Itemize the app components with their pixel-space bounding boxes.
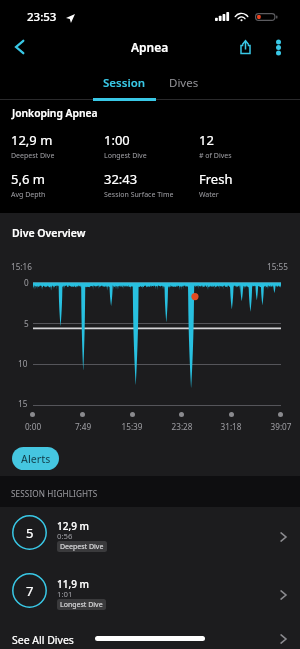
staticText: 23:53	[27, 9, 57, 25]
staticText: 12	[199, 131, 214, 149]
staticText: 23:28	[160, 421, 204, 432]
staticText: Water	[199, 190, 219, 200]
staticText: SESSION HIGHLIGHTS	[11, 488, 98, 499]
button[interactable]: 5	[0, 508, 300, 566]
button[interactable]: Back	[2, 30, 36, 64]
button[interactable]: Dives	[160, 70, 208, 95]
button[interactable]: More options	[266, 35, 290, 59]
staticText: 39:07	[259, 421, 300, 432]
staticText: 11,9 m	[57, 577, 89, 591]
staticText: 0	[24, 277, 29, 288]
staticText: Deepest Dive	[11, 151, 55, 161]
staticText: 15:16	[11, 261, 32, 272]
staticText: Apnea	[131, 39, 169, 55]
staticText: 31:18	[209, 421, 253, 432]
staticText: 10	[18, 358, 28, 369]
staticText: Longest Dive	[104, 151, 147, 161]
button[interactable]: Session	[93, 70, 156, 95]
button[interactable]: See All Dives	[0, 621, 300, 649]
staticText: Dive Overview	[12, 226, 86, 240]
staticText: 7	[26, 582, 34, 600]
staticText: Session Surface Time	[104, 190, 174, 200]
staticText: 1:00	[104, 131, 130, 149]
button[interactable]: Share	[231, 33, 259, 61]
staticText: Longest Dive	[60, 600, 103, 610]
staticText: 5	[26, 524, 34, 542]
staticText: Alerts	[21, 452, 51, 466]
staticText: 7:49	[61, 421, 105, 432]
staticText: 15:55	[267, 261, 288, 272]
staticText: 15:39	[110, 421, 154, 432]
staticText: Jonkoping Apnea	[12, 106, 98, 120]
staticText: 32:43	[104, 170, 138, 188]
staticText: 5,6 m	[11, 170, 45, 188]
staticText: 15	[18, 398, 28, 409]
staticText: 12,9 m	[11, 131, 53, 149]
staticText: Session	[103, 75, 146, 91]
staticText: Deepest Dive	[60, 542, 104, 552]
button[interactable]: 7	[0, 566, 300, 624]
staticText: 5	[24, 318, 29, 329]
staticText: 0:56	[57, 531, 73, 542]
staticText: 12,9 m	[57, 519, 89, 533]
staticText: 0:00	[11, 421, 55, 432]
staticText: # of Dives	[199, 151, 232, 161]
button[interactable]: Alerts	[12, 447, 59, 470]
staticText: Avg Depth	[11, 190, 46, 200]
staticText: 1:01	[57, 589, 73, 600]
staticText: See All Dives	[12, 633, 74, 647]
staticText: Fresh	[199, 170, 233, 188]
staticText: Dives	[169, 75, 199, 91]
